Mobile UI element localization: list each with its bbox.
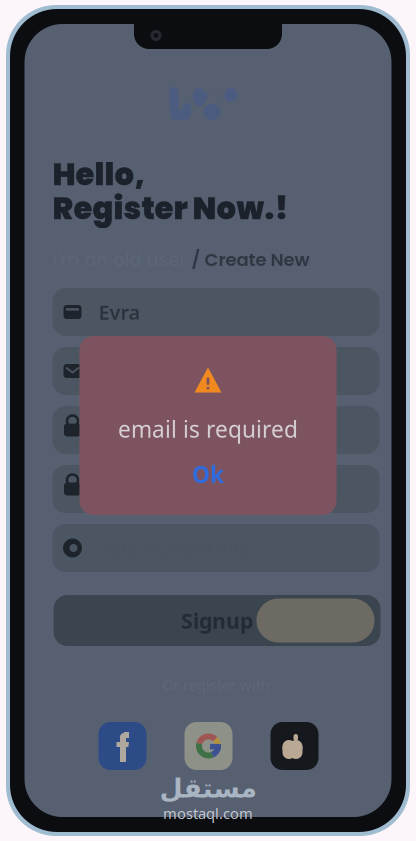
button[interactable]: Evra	[52, 288, 379, 336]
button[interactable]: Signup	[53, 595, 380, 646]
staticText: / Create New	[191, 247, 309, 272]
button[interactable]: Password	[52, 406, 379, 454]
staticText: email is required	[118, 414, 298, 444]
staticText: Confirm Password	[98, 476, 270, 502]
staticText: mostaql.com	[163, 803, 253, 823]
staticText: Ok	[192, 459, 224, 489]
button[interactable]: / Create New	[191, 247, 309, 272]
button[interactable]: Email	[52, 347, 379, 395]
staticText: مستقل	[159, 773, 257, 804]
button[interactable]: Sign up with Google	[184, 722, 232, 770]
button[interactable]: Your current city	[52, 524, 379, 572]
staticText: Register Now.!	[52, 187, 288, 230]
button[interactable]: Ok	[138, 458, 278, 490]
staticText: Signup	[181, 606, 253, 635]
button[interactable]: Confirm Password	[52, 465, 379, 513]
staticText: Password	[98, 417, 189, 443]
staticText: Evra	[98, 299, 140, 325]
button[interactable]: Sign up with Apple	[270, 722, 318, 770]
button[interactable]: Sign up with Facebook	[98, 722, 146, 770]
staticText: Hello,	[52, 153, 144, 196]
